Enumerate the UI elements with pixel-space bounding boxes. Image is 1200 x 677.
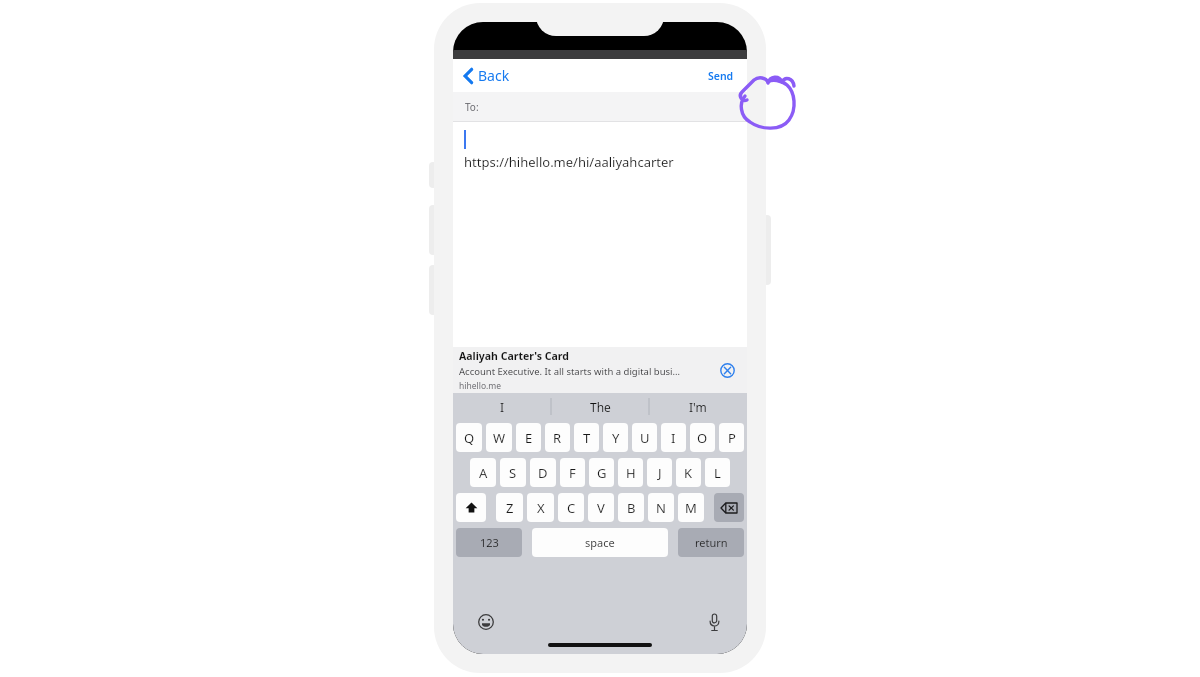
button[interactable]: S [500, 458, 526, 487]
button[interactable]: Remove link preview [716, 359, 738, 381]
button[interactable]: X [527, 493, 554, 522]
staticText: C [567, 499, 576, 517]
button[interactable]: E [516, 423, 541, 452]
staticText: 123 [480, 535, 499, 550]
staticText: Account Executive. It all starts with a … [459, 365, 681, 378]
staticText: J [658, 464, 662, 482]
button[interactable]: B [618, 493, 644, 522]
button[interactable]: return [678, 528, 744, 557]
button[interactable]: M [678, 493, 704, 522]
button[interactable]: space [532, 528, 668, 557]
staticText: https://hihello.me/hi/aaliyahcarter [464, 153, 674, 171]
staticText: space [585, 535, 615, 550]
button[interactable]: W [486, 423, 512, 452]
staticText: The [590, 399, 611, 415]
staticText: Back [478, 66, 510, 85]
staticText: Aaliyah Carter's Card [459, 349, 569, 363]
staticText: M [685, 499, 697, 517]
button[interactable]: Back [461, 62, 513, 89]
staticText: U [640, 429, 650, 447]
button[interactable]: Y [603, 423, 628, 452]
staticText: Send [708, 69, 734, 83]
button[interactable]: I'm [649, 393, 747, 420]
staticText: I [500, 399, 505, 415]
staticText: K [684, 464, 693, 482]
staticText: W [493, 429, 506, 447]
button[interactable]: A [470, 458, 496, 487]
staticText: Z [506, 499, 514, 517]
button[interactable]: H [618, 458, 643, 487]
staticText: hihello.me [459, 380, 502, 392]
staticText: H [626, 464, 636, 482]
button[interactable]: J [647, 458, 672, 487]
button[interactable]: I [661, 423, 686, 452]
staticText: N [656, 499, 666, 517]
button[interactable]: K [676, 458, 701, 487]
staticText: P [728, 429, 736, 447]
staticText: D [538, 464, 548, 482]
staticText: A [479, 464, 488, 482]
button[interactable]: Delete [714, 493, 744, 522]
button[interactable]: O [690, 423, 715, 452]
button[interactable]: The [551, 393, 649, 420]
button[interactable]: Shift [456, 493, 486, 522]
button[interactable]: P [719, 423, 744, 452]
button[interactable]: L [705, 458, 730, 487]
staticText: Q [464, 429, 475, 447]
button[interactable]: I [453, 393, 551, 420]
staticText: R [553, 429, 562, 447]
button[interactable]: Q [456, 423, 482, 452]
button[interactable]: V [588, 493, 614, 522]
button[interactable]: U [632, 423, 657, 452]
button[interactable]: Z [496, 493, 523, 522]
button[interactable]: 123 [456, 528, 522, 557]
button[interactable]: C [558, 493, 584, 522]
staticText: V [597, 499, 605, 517]
button[interactable]: F [560, 458, 585, 487]
staticText: E [525, 429, 533, 447]
staticText: F [569, 464, 576, 482]
staticText: B [627, 499, 636, 517]
staticText: X [537, 499, 545, 517]
staticText: L [714, 464, 721, 482]
staticText: O [697, 429, 708, 447]
button[interactable]: Send [704, 64, 738, 88]
button[interactable]: T [574, 423, 599, 452]
staticText: G [597, 464, 607, 482]
staticText: return [695, 535, 728, 550]
staticText: Y [612, 429, 620, 447]
button[interactable]: D [530, 458, 556, 487]
button[interactable]: https://hihello.me/hi/aaliyahcarter [453, 122, 747, 347]
button[interactable]: Aaliyah Carter's Card [453, 347, 747, 393]
staticText: S [509, 464, 517, 482]
staticText: I [671, 429, 676, 447]
button[interactable]: R [545, 423, 570, 452]
button[interactable]: N [648, 493, 674, 522]
staticText: To: [465, 100, 479, 114]
staticText: T [583, 429, 591, 447]
button[interactable]: Dictation [703, 611, 725, 633]
staticText: I'm [689, 399, 707, 415]
button[interactable]: Emoji [475, 611, 497, 633]
button[interactable]: G [589, 458, 614, 487]
